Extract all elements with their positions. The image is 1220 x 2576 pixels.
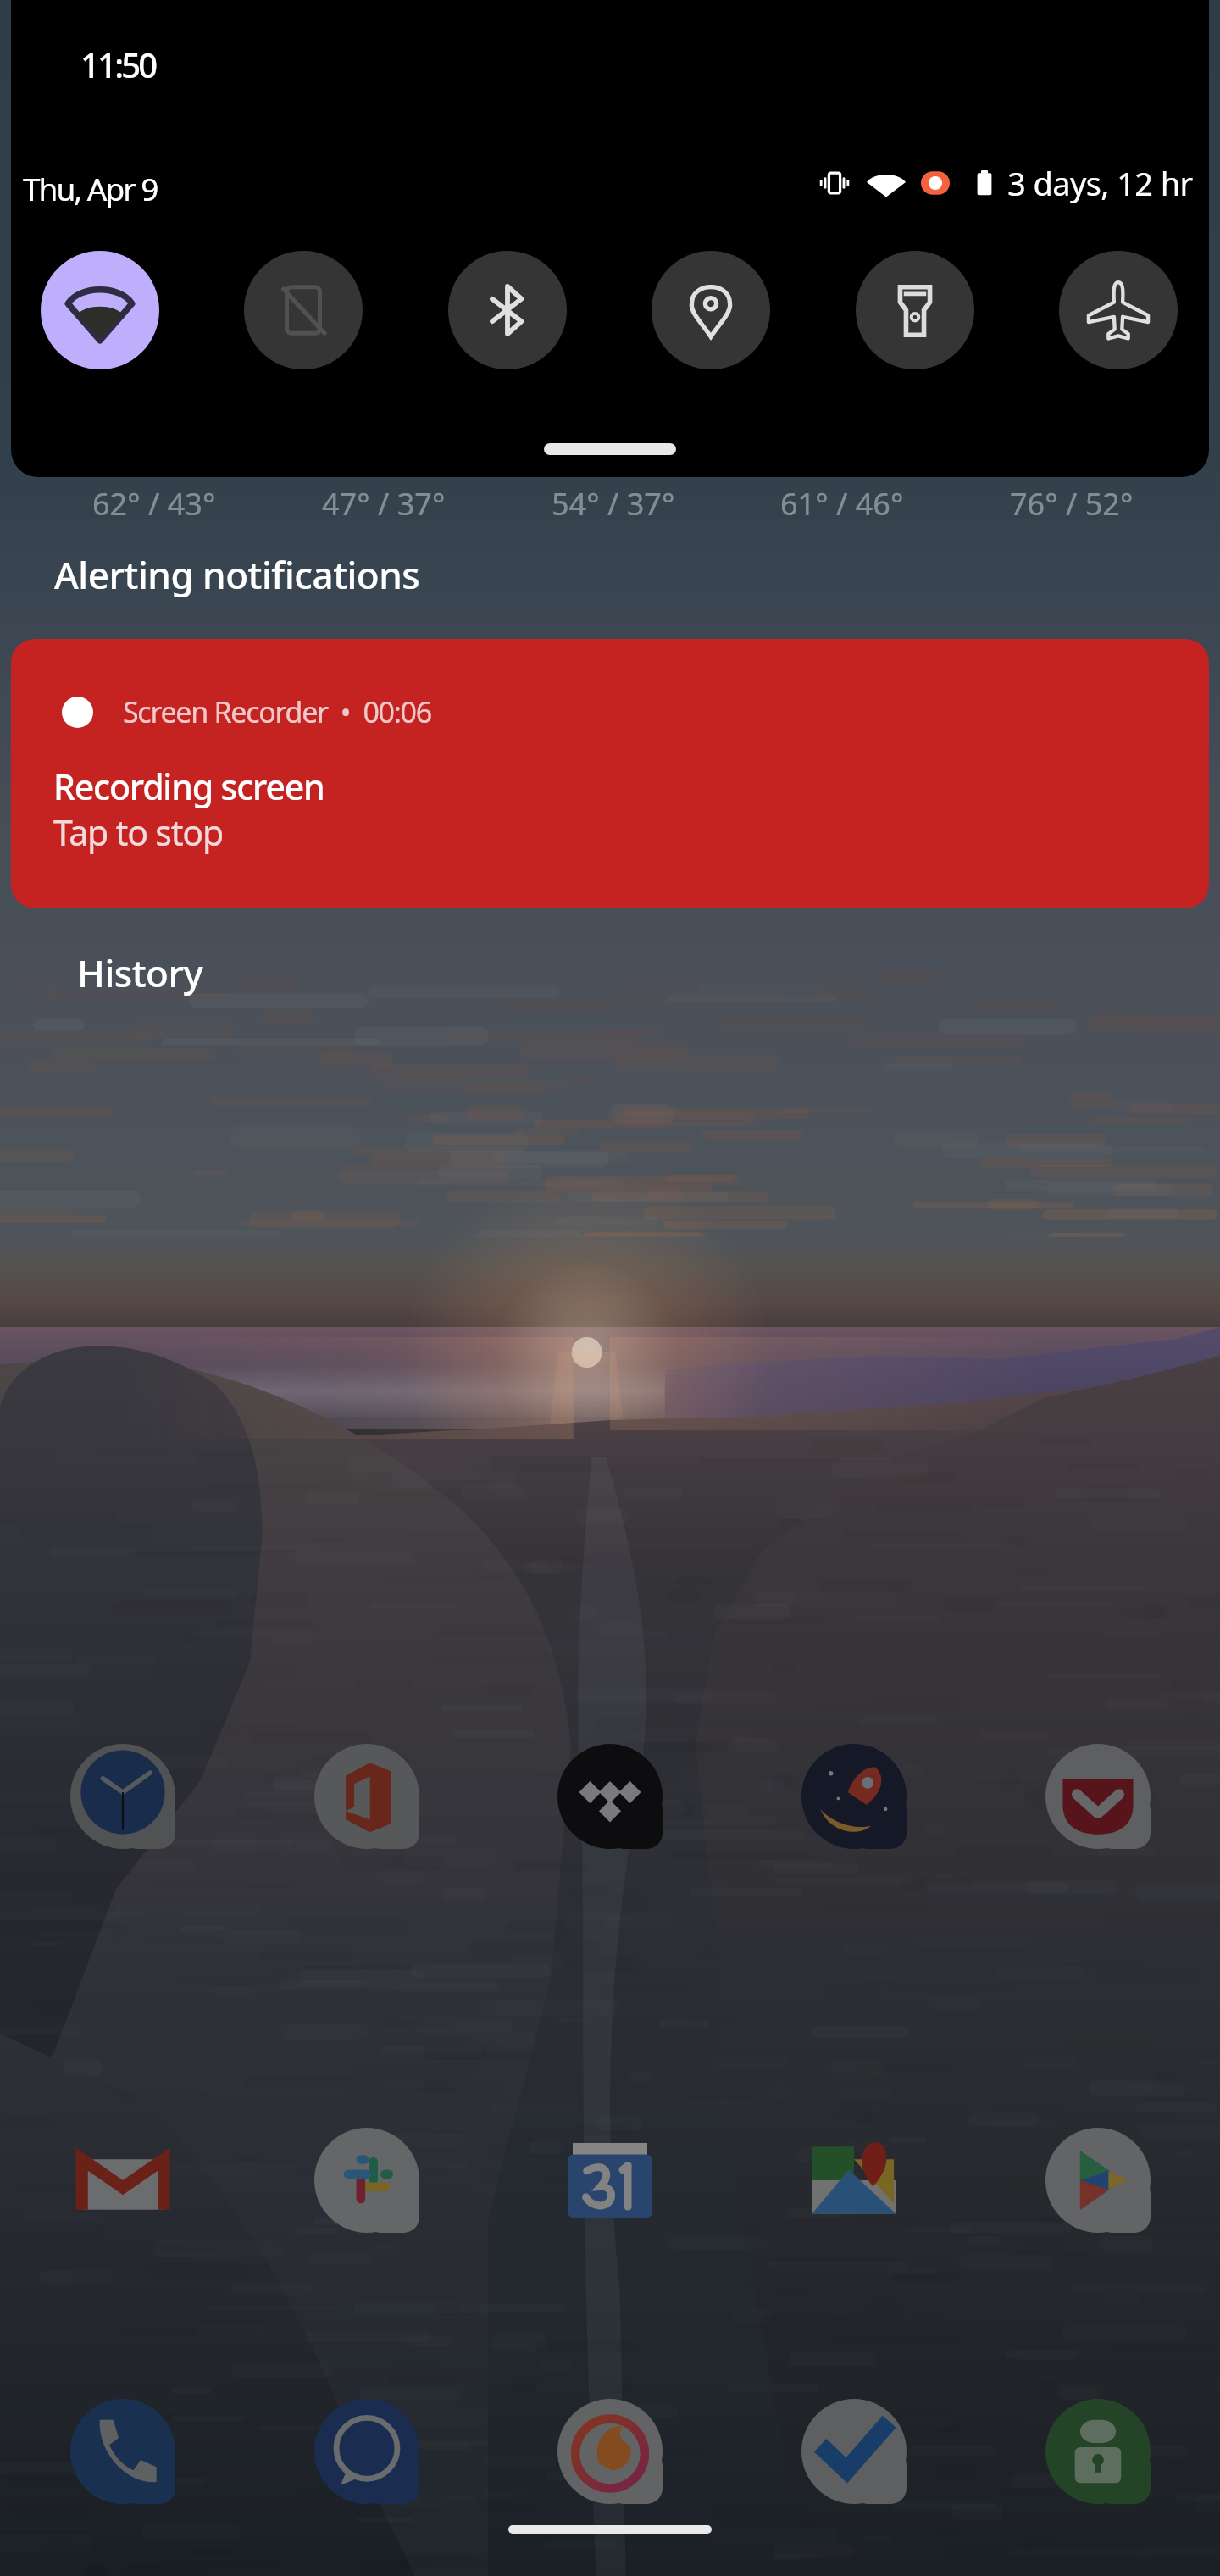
button[interactable]: Pocket — [1045, 1744, 1151, 1849]
button[interactable]: Office — [314, 1744, 419, 1849]
button[interactable]: Tidal — [557, 1744, 663, 1849]
button[interactable]: Maps — [801, 2128, 907, 2233]
button[interactable]: Flashlight — [856, 251, 974, 369]
button[interactable]: Airplane mode — [1059, 251, 1178, 369]
staticText: 62° / 43° — [92, 483, 216, 525]
staticText: 47° / 37° — [322, 483, 446, 525]
button[interactable]: Slack — [314, 2128, 419, 2233]
button[interactable]: Calendar — [557, 2128, 663, 2233]
staticText: 61° / 46° — [780, 483, 904, 525]
button[interactable]: Wi-Fi — [41, 251, 159, 369]
button[interactable]: Tasks — [801, 2399, 907, 2504]
staticText: Recording screen — [53, 763, 324, 810]
button[interactable]: Gmail — [70, 2128, 175, 2233]
button[interactable]: Clock — [70, 1744, 175, 1849]
button[interactable]: Rocket — [801, 1744, 907, 1849]
button[interactable]: Location — [652, 251, 770, 369]
button[interactable]: Firefox — [557, 2399, 663, 2504]
staticText: Screen Recorder • 00:06 — [123, 692, 431, 731]
button[interactable]: Do not disturb — [244, 251, 363, 369]
staticText: 76° / 52° — [1010, 483, 1134, 525]
button[interactable]: KeePass — [1045, 2399, 1151, 2504]
staticText: Tap to stop — [53, 808, 223, 856]
button[interactable]: Phone — [70, 2399, 175, 2504]
button[interactable]: Play Store — [1045, 2128, 1151, 2233]
button[interactable]: Screen Recorder • 00:06 — [11, 639, 1209, 908]
staticText: 11:50 — [80, 42, 156, 87]
staticText: Alerting notifications — [54, 549, 420, 600]
staticText: 3 days, 12 hr — [1007, 161, 1193, 205]
staticText: History — [77, 947, 203, 998]
staticText: Thu, Apr 9 — [23, 167, 158, 209]
button[interactable]: Bluetooth — [448, 251, 567, 369]
button[interactable]: Signal — [314, 2399, 419, 2504]
staticText: 54° / 37° — [552, 483, 675, 525]
